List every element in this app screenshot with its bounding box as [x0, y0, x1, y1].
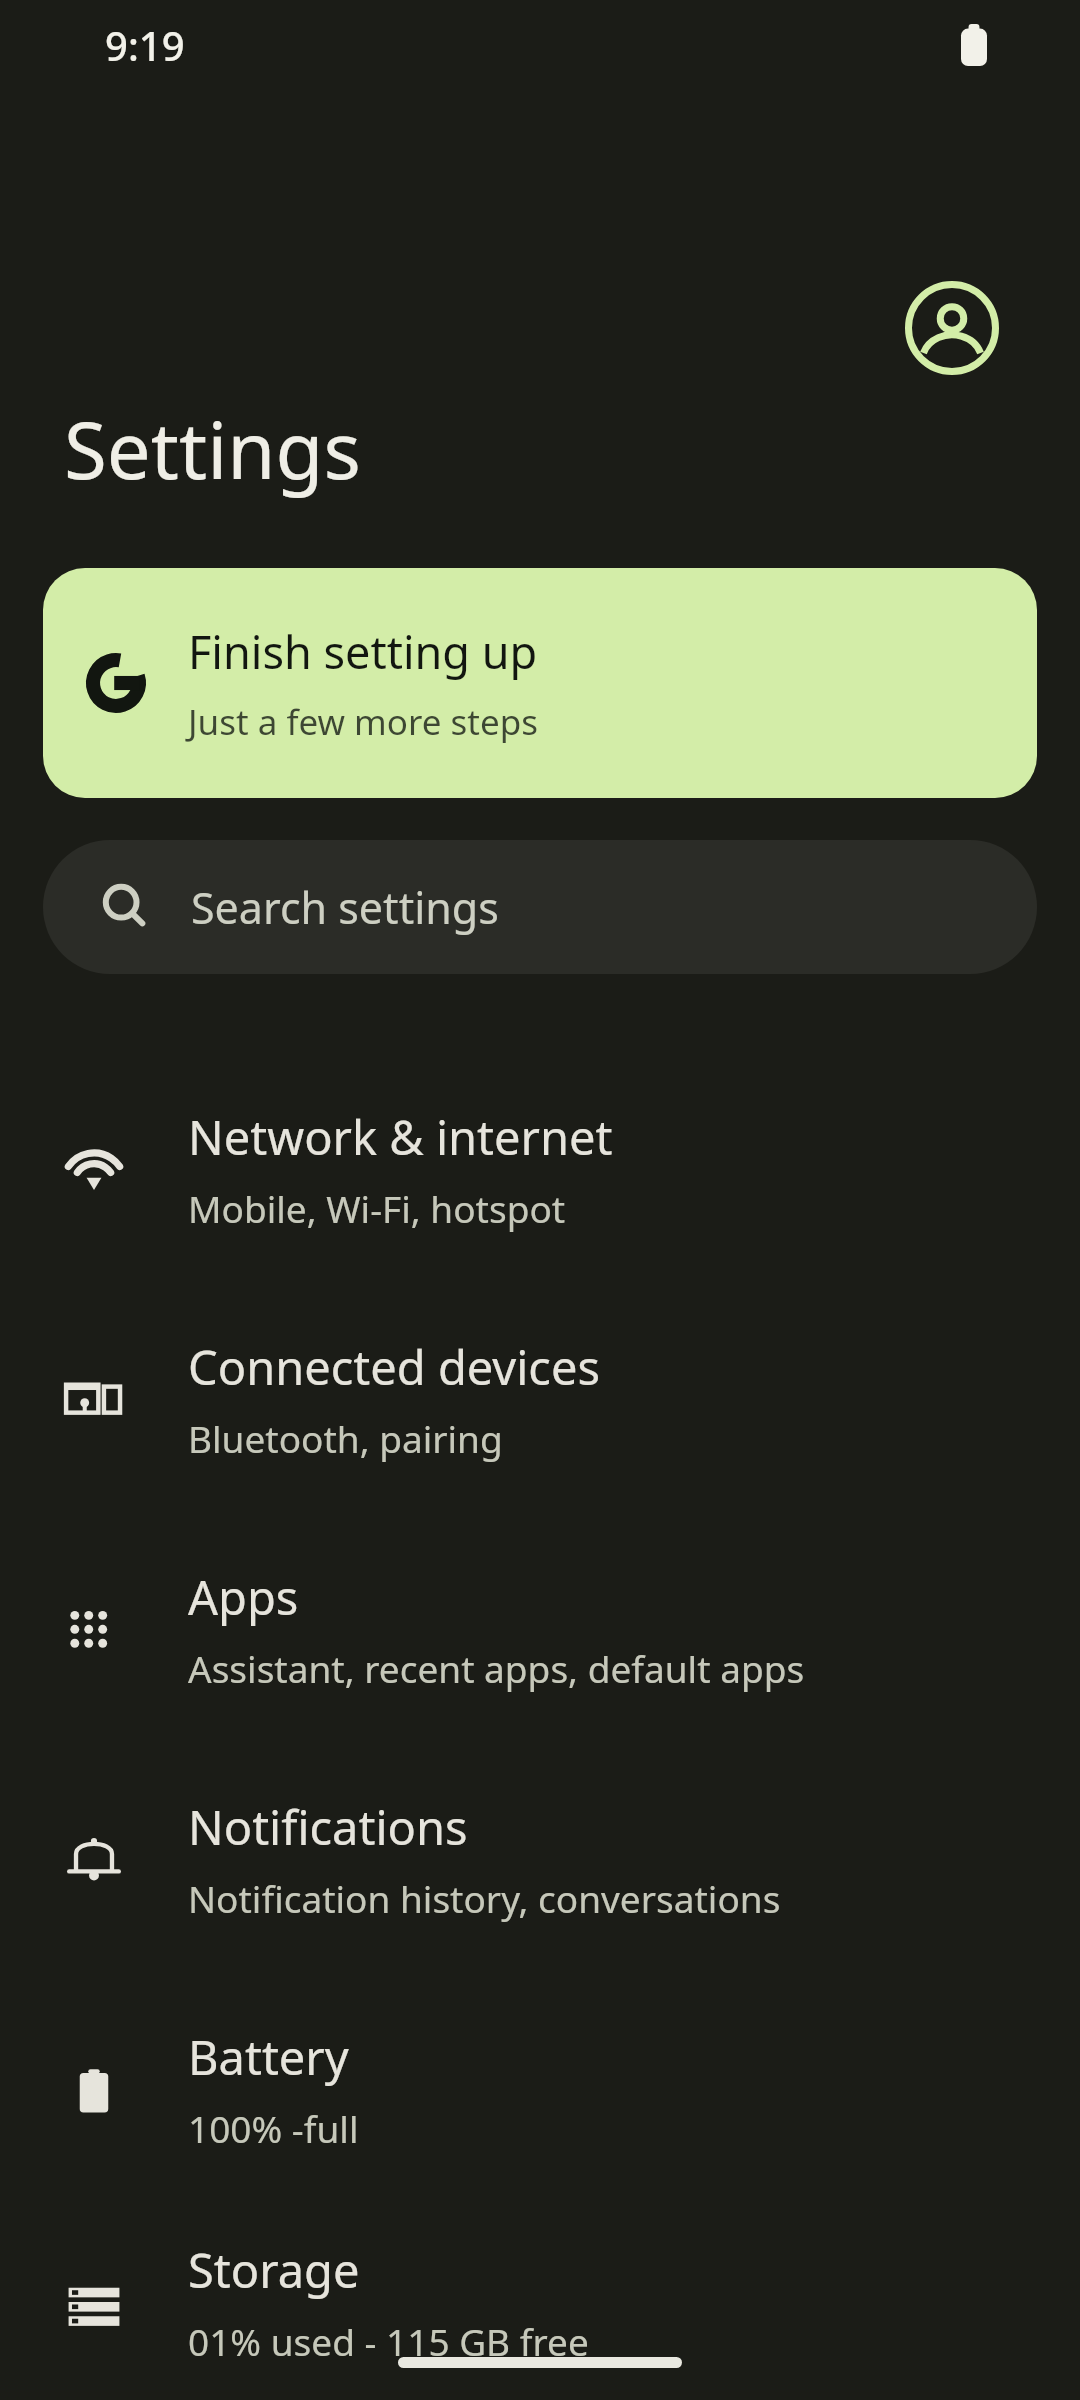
button[interactable]: Network & internet: [0, 1054, 1080, 1284]
button[interactable]: Finish setting up: [43, 568, 1037, 798]
staticText: 9:19: [105, 18, 185, 72]
button[interactable]: Account: [903, 279, 1001, 377]
staticText: Mobile, Wi-Fi, hotspot: [188, 1183, 566, 1233]
button[interactable]: Connected devices: [0, 1284, 1080, 1514]
button[interactable]: Apps: [0, 1514, 1080, 1744]
staticText: 01% used - 115 GB free: [188, 2316, 589, 2366]
staticText: Search settings: [191, 878, 499, 937]
staticText: Battery: [188, 2025, 349, 2089]
staticText: Just a few more steps: [188, 698, 539, 746]
button[interactable]: Storage: [0, 2204, 1080, 2400]
staticText: 100% -full: [188, 2103, 359, 2153]
staticText: Connected devices: [188, 1335, 600, 1399]
staticText: Storage: [188, 2238, 360, 2302]
button[interactable]: Notifications: [0, 1744, 1080, 1974]
staticText: Finish setting up: [188, 621, 538, 682]
staticText: Notifications: [188, 1795, 468, 1859]
staticText: Settings: [64, 396, 361, 502]
staticText: Apps: [188, 1565, 299, 1629]
staticText: Network & internet: [188, 1105, 613, 1169]
button[interactable]: Battery: [0, 1974, 1080, 2204]
staticText: Notification history, conversations: [188, 1873, 781, 1923]
staticText: Bluetooth, pairing: [188, 1413, 503, 1463]
button[interactable]: Search settings: [43, 840, 1037, 974]
staticText: Assistant, recent apps, default apps: [188, 1643, 805, 1693]
